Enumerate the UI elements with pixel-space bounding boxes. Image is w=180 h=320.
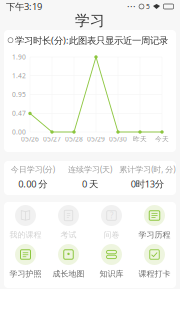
staticText: 问卷: [103, 230, 119, 240]
staticText: 05/28: [65, 135, 83, 143]
button[interactable]: ?: [90, 205, 133, 240]
button[interactable]: 成长地图: [47, 244, 90, 279]
staticText: 课程打卡: [138, 269, 170, 279]
staticText: 5: [146, 2, 150, 11]
button[interactable]: 课程打卡: [133, 244, 176, 279]
staticText: 知识库: [99, 269, 123, 279]
button[interactable]: 学习历程: [133, 205, 176, 240]
staticText: 0.95: [12, 90, 26, 99]
staticText: 我的课程: [9, 230, 41, 240]
staticText: ···: [127, 0, 136, 13]
staticText: 学习时长(分):此图表只显示近一周记录: [15, 34, 168, 46]
staticText: 考试: [60, 230, 76, 240]
staticText: 今日学习(分): [11, 164, 55, 175]
staticText: 0.00: [12, 128, 26, 136]
staticText: 1.90: [12, 53, 26, 61]
staticText: 昨天: [133, 135, 147, 143]
staticText: 下午3:19: [6, 0, 42, 13]
staticText: 学习历程: [138, 230, 170, 240]
button[interactable]: 我的课程: [4, 205, 47, 240]
staticText: 成长地图: [52, 269, 84, 279]
staticText: 0.00 分: [18, 178, 47, 190]
staticText: 今天: [155, 135, 169, 143]
staticText: ?: [110, 210, 113, 221]
staticText: 0.47: [12, 109, 26, 118]
staticText: 0时13分: [131, 178, 164, 190]
staticText: 05/30: [109, 135, 127, 143]
button[interactable]: 知识库: [90, 244, 133, 279]
staticText: 05/27: [43, 135, 61, 143]
button[interactable]: 考试: [47, 205, 90, 240]
staticText: 05/26: [21, 135, 39, 143]
staticText: 连续学习(天): [68, 164, 112, 175]
staticText: 累计学习(时, 分): [119, 164, 175, 175]
staticText: 学习: [75, 11, 105, 29]
staticText: 1.42: [12, 71, 26, 80]
staticText: 05/29: [87, 135, 105, 143]
button[interactable]: 学习护照: [4, 244, 47, 279]
staticText: 0 天: [82, 178, 98, 190]
staticText: 学习护照: [9, 269, 41, 279]
